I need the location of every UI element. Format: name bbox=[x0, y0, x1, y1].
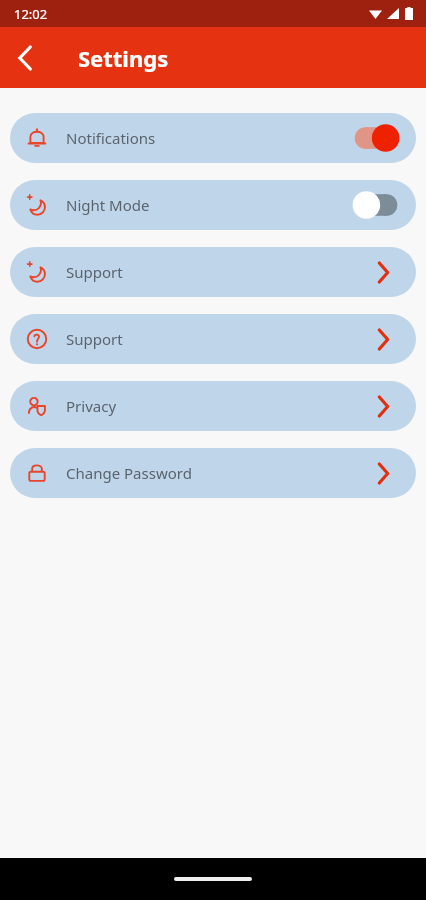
staticText: Change Password bbox=[66, 463, 192, 483]
staticText: Night Mode bbox=[66, 195, 150, 215]
staticText: Support bbox=[66, 329, 123, 349]
button[interactable]: Change Password bbox=[10, 448, 416, 498]
button[interactable]: Support bbox=[10, 247, 416, 297]
staticText: Notifications bbox=[66, 128, 156, 148]
staticText: Settings bbox=[78, 43, 169, 73]
button[interactable]: Back bbox=[8, 41, 42, 75]
staticText: 12:02 bbox=[14, 5, 48, 23]
staticText: Privacy bbox=[66, 396, 117, 416]
button[interactable]: Night Mode bbox=[10, 180, 416, 230]
button[interactable]: Toggle off bbox=[350, 190, 402, 220]
button[interactable]: Notifications bbox=[10, 113, 416, 163]
button[interactable]: Toggle on bbox=[350, 123, 402, 153]
staticText: Support bbox=[66, 262, 123, 282]
button[interactable]: Support bbox=[10, 314, 416, 364]
button[interactable]: Privacy bbox=[10, 381, 416, 431]
